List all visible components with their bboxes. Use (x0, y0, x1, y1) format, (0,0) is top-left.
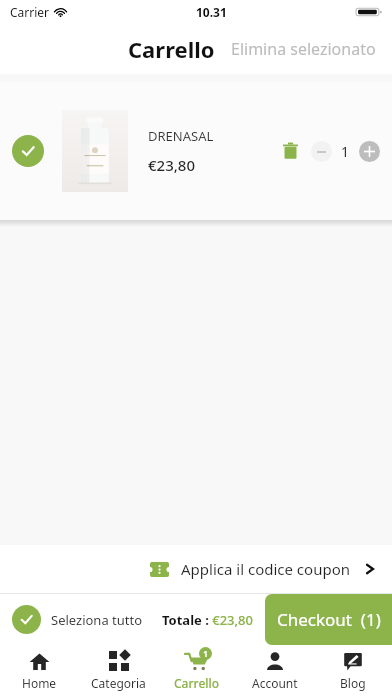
staticText: 10.31 (196, 4, 227, 20)
staticText: Account (252, 675, 298, 691)
button[interactable]: Categoria (79, 645, 158, 696)
button[interactable]: Applica il codice coupon (0, 545, 392, 593)
button[interactable]: 1 (158, 645, 236, 696)
staticText: Applica il codice coupon (181, 559, 350, 579)
button[interactable]: Diminuisci quantità (311, 141, 332, 162)
button[interactable]: Home (0, 645, 79, 696)
button[interactable]: Elimina selezionato (229, 32, 378, 66)
staticText: DRENASAL (148, 127, 214, 145)
button[interactable]: Account (236, 645, 314, 696)
button[interactable]: Blog (314, 645, 392, 696)
staticText: Elimina selezionato (231, 38, 376, 60)
staticText: Seleziona tutto (51, 611, 143, 629)
staticText: Carrello (128, 34, 215, 64)
staticText: 1 (203, 648, 208, 659)
staticText: Blog (340, 675, 366, 691)
staticText: Categoria (91, 675, 146, 691)
staticText: Totale : €23,80 (162, 611, 253, 629)
button[interactable]: Seleziona tutto (12, 605, 143, 634)
button[interactable]: Elimina (277, 138, 303, 164)
button[interactable]: Seleziona prodotto (12, 135, 44, 167)
staticText: 1 (341, 142, 350, 161)
button[interactable]: Checkout (1) (265, 594, 392, 645)
button[interactable]: Aumenta quantità (359, 141, 380, 162)
staticText: Checkout (1) (277, 608, 381, 631)
staticText: Carrier (10, 4, 50, 20)
staticText: €23,80 (148, 155, 195, 175)
staticText: Home (22, 675, 57, 691)
staticText: Carrello (174, 675, 220, 691)
